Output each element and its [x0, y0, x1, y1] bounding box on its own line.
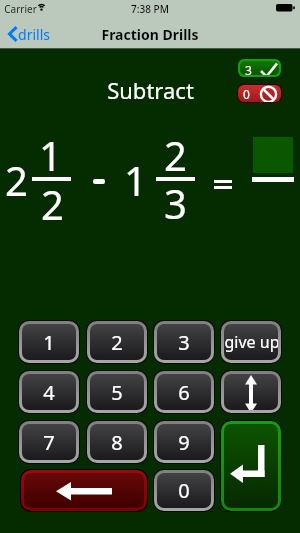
staticText: drills [18, 25, 50, 44]
button[interactable]: 7 [22, 424, 76, 460]
button[interactable]: 3 [157, 324, 211, 360]
staticText: 7 [43, 429, 55, 456]
staticText: 2 [5, 153, 28, 205]
staticText: 2 [164, 128, 187, 180]
staticText: 0 [178, 477, 190, 504]
staticText: Fraction Drills [101, 25, 199, 44]
button[interactable] [224, 424, 278, 508]
staticText: 0 [243, 86, 250, 102]
staticText: 3 [178, 329, 190, 356]
staticText: 5 [111, 379, 123, 406]
staticText: 2 [111, 329, 123, 356]
button[interactable]: 6 [157, 374, 211, 410]
staticText: 8 [111, 429, 123, 456]
button[interactable]: 5 [90, 374, 144, 410]
button[interactable]: drills [4, 22, 56, 46]
staticText: 3 [245, 62, 252, 75]
staticText: 2 [41, 177, 64, 229]
staticText: Carrier [4, 2, 37, 16]
staticText: 6 [178, 379, 190, 406]
staticText: 1 [124, 153, 147, 205]
staticText: 7:38 PM [131, 2, 169, 16]
staticText: give up [224, 331, 278, 353]
button[interactable]: 0 [157, 473, 211, 508]
staticText: 3 [164, 176, 187, 228]
button[interactable]: give up [224, 324, 278, 360]
button[interactable]: 9 [157, 424, 211, 460]
staticText: 1 [43, 329, 55, 356]
staticText: 4 [43, 379, 55, 406]
button[interactable] [224, 374, 278, 410]
button[interactable]: 4 [22, 374, 76, 410]
staticText: 9 [178, 429, 190, 456]
staticText: 1 [39, 128, 62, 180]
button[interactable] [24, 473, 144, 508]
staticText: Subtract [107, 75, 194, 103]
button[interactable]: 8 [90, 424, 144, 460]
button[interactable]: 1 [22, 324, 76, 360]
button[interactable]: 2 [90, 324, 144, 360]
